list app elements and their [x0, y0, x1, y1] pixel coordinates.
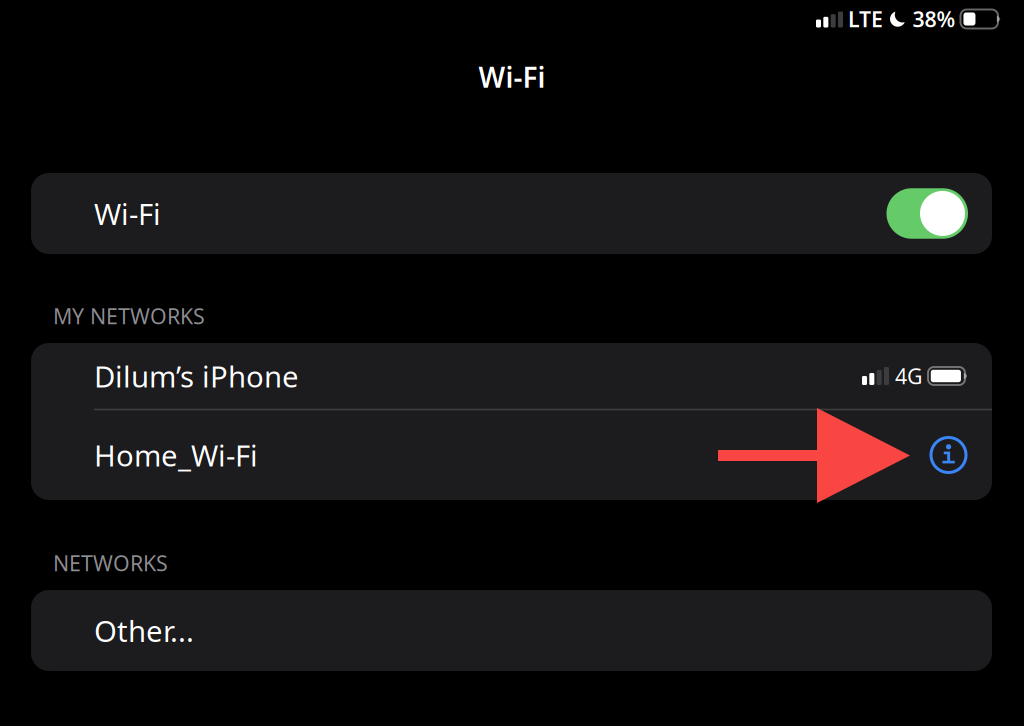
button[interactable]: Home_Wi-Fi: [31, 410, 896, 500]
staticText: NETWORKS: [53, 549, 168, 577]
staticText: LTE: [848, 5, 883, 33]
staticText: 38%: [912, 5, 955, 33]
staticText: Home_Wi-Fi: [94, 435, 258, 474]
staticText: MY NETWORKS: [53, 302, 205, 330]
staticText: 4G: [895, 362, 923, 390]
staticText: Dilum’s iPhone: [94, 356, 299, 395]
button[interactable]: Other...: [31, 590, 992, 671]
button[interactable]: Wi-Fi: [31, 173, 992, 254]
staticText: Wi-Fi: [94, 194, 161, 233]
button[interactable]: Dilum’s iPhone: [31, 343, 992, 409]
button[interactable]: Network details: [896, 410, 992, 500]
staticText: Other...: [94, 611, 194, 650]
staticText: Wi-Fi: [478, 58, 545, 96]
